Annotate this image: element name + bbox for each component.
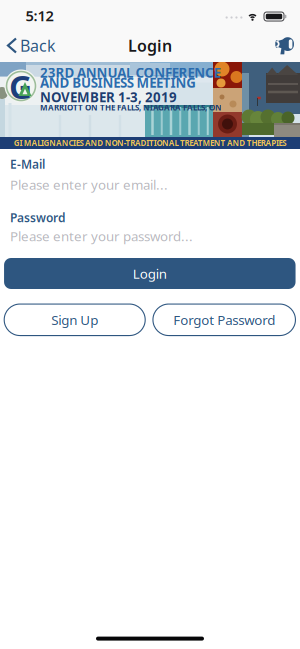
button[interactable]: Back bbox=[8, 35, 56, 56]
staticText: Back bbox=[20, 35, 56, 56]
button[interactable]: Forgot Password bbox=[153, 304, 295, 336]
staticText: 23RD ANNUAL CONFERENCE bbox=[40, 64, 221, 81]
staticText: G bbox=[9, 65, 32, 108]
staticText: GI MALIGNANCIES AND NON-TRADITIONAL TREA… bbox=[14, 138, 286, 148]
staticText: Login bbox=[128, 35, 172, 56]
staticText: NOVEMBER 1-3, 2019 bbox=[40, 88, 177, 106]
staticText: MARRIOTT ON THE FALLS, NIAGARA FALLS, ON bbox=[40, 102, 222, 113]
staticText: Forgot Password bbox=[173, 311, 275, 329]
staticText: Password bbox=[10, 209, 66, 225]
button[interactable]: Please enter your email... bbox=[10, 172, 290, 196]
button[interactable]: Please enter your password... bbox=[10, 224, 290, 248]
staticText: Please enter your email... bbox=[10, 176, 168, 193]
staticText: 5:12 bbox=[25, 6, 53, 25]
staticText: Sign Up bbox=[51, 311, 98, 329]
button[interactable]: Login bbox=[4, 258, 296, 289]
button[interactable] bbox=[273, 36, 294, 55]
button[interactable]: Sign Up bbox=[4, 304, 145, 336]
staticText: AND BUSINESS MEETING bbox=[40, 74, 196, 91]
staticText: Please enter your password... bbox=[10, 227, 193, 245]
staticText: Login bbox=[133, 265, 167, 282]
staticText: E-Mail bbox=[10, 156, 45, 172]
